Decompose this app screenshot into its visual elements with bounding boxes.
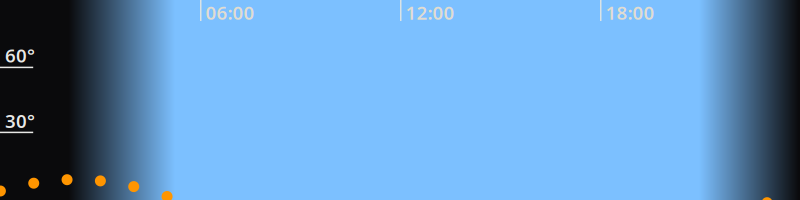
staticText: 06:00 xyxy=(205,0,254,25)
staticText: 30° xyxy=(5,108,35,133)
staticText: 60° xyxy=(5,43,35,68)
staticText: 18:00 xyxy=(605,0,654,25)
staticText: 12:00 xyxy=(405,0,454,25)
